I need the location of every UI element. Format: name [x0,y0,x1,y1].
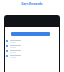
button[interactable] [6,54,57,58]
staticText: Earn Rewards [0,2,64,6]
button[interactable] [6,49,57,53]
button[interactable] [6,39,57,43]
button[interactable] [11,32,50,36]
button[interactable] [6,44,57,48]
